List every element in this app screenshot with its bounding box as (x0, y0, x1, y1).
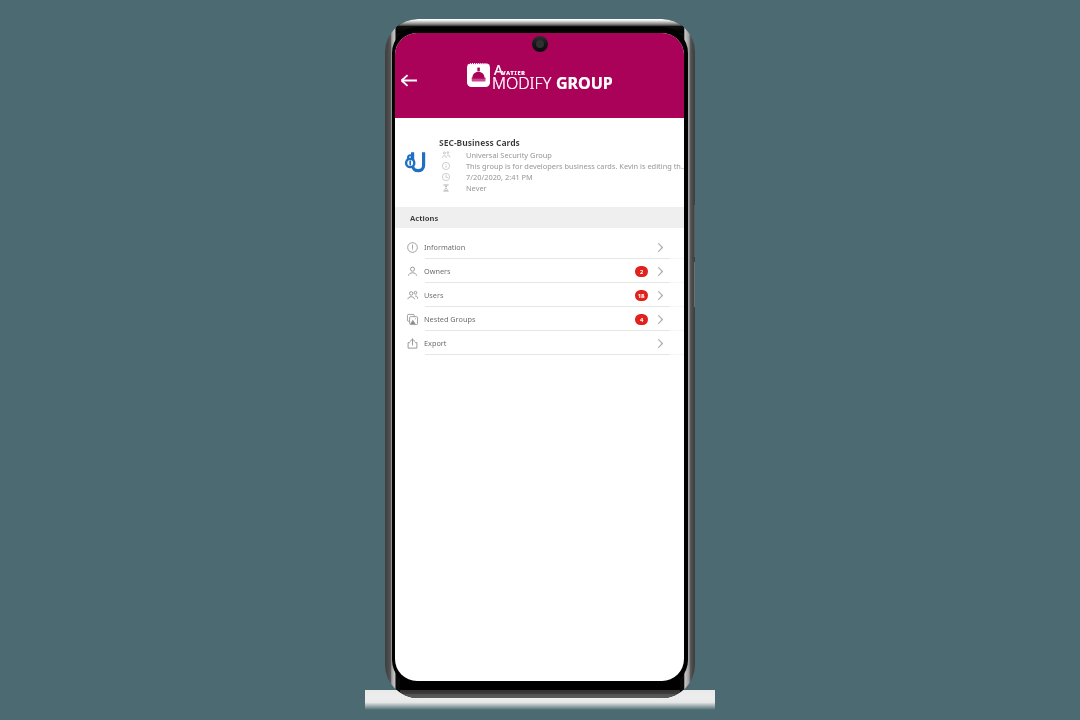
staticText: MODIFY (492, 72, 552, 94)
button[interactable]: Export (395, 331, 684, 355)
staticText: 18 (638, 292, 645, 300)
staticText: VATIER (502, 69, 526, 76)
staticText: Users (424, 290, 444, 300)
staticText: Export (424, 338, 447, 348)
staticText: Universal Security Group (466, 150, 552, 160)
staticText: Never (466, 183, 487, 193)
button[interactable]: Information (395, 235, 684, 259)
staticText: Information (424, 242, 466, 252)
staticText: 2 (640, 268, 644, 276)
staticText: Actions (410, 213, 439, 223)
staticText: Nested Groups (424, 314, 476, 324)
button[interactable]: Back (395, 67, 424, 93)
button[interactable]: Users (395, 283, 684, 307)
staticText: GROUP (556, 72, 613, 94)
staticText: Owners (424, 266, 451, 276)
button[interactable]: Nested Groups (395, 307, 684, 331)
button[interactable]: Owners (395, 259, 684, 283)
staticText: 4 (640, 316, 644, 324)
staticText: This group is for developers business ca… (466, 161, 684, 171)
staticText: SEC-Business Cards (439, 137, 520, 149)
staticText: 7/20/2020, 2:41 PM (466, 172, 533, 182)
staticText: A (494, 60, 503, 79)
